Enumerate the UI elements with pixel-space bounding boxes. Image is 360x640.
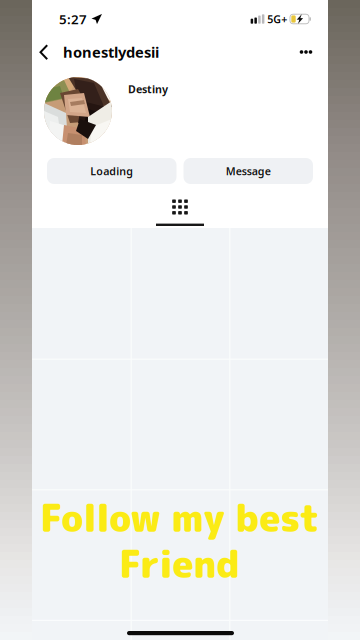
staticText: 5G+ [267, 12, 287, 26]
staticText: Follow my best [40, 492, 319, 544]
button[interactable]: Loading [47, 158, 176, 184]
staticText: honestlydesii [63, 42, 159, 62]
button[interactable]: Back [33, 38, 55, 66]
button[interactable]: Message [183, 158, 313, 184]
staticText: 5:27 [59, 10, 87, 28]
staticText: Friend [119, 538, 240, 590]
staticText: Message [226, 164, 271, 178]
button[interactable]: Posts grid [156, 199, 204, 226]
staticText: Destiny [128, 82, 168, 96]
staticText: Loading [90, 164, 133, 178]
button[interactable]: More options [293, 38, 319, 66]
